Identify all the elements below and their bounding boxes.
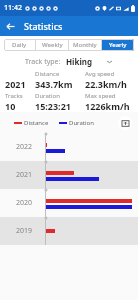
staticText: Monthly [73,41,97,49]
staticText: 2020 [16,198,33,208]
staticText: 15:23:21 [35,100,71,112]
button[interactable]: Back [1,17,19,35]
button[interactable]: Track type: [0,54,138,69]
button[interactable]: Monthly [69,39,101,51]
staticText: Weekly [42,41,63,49]
staticText: Daily [12,41,27,49]
staticText: Duration [35,92,60,100]
staticText: 11:42 [4,3,22,13]
button[interactable]: Yearly [102,39,134,51]
button[interactable]: 2022 [0,133,138,161]
staticText: 10 [5,100,16,112]
staticText: 1226km/h [85,100,130,112]
button[interactable]: Export [118,116,132,130]
button[interactable]: Weekly [36,39,68,51]
staticText: Track type: [25,57,61,67]
staticText: Hiking [66,56,93,67]
staticText: Tracks [5,92,23,100]
button[interactable]: 2021 [0,161,138,189]
staticText: Duration [69,119,94,127]
button[interactable]: 2020 [0,189,138,217]
staticText: Distance [24,119,49,127]
staticText: 2022 [16,142,33,152]
staticText: Statistics [24,20,63,32]
button[interactable]: 2019 [0,217,138,245]
button[interactable]: Daily [4,39,35,51]
staticText: Max speed [85,92,116,100]
staticText: 2021 [5,78,26,90]
staticText: 22.3km/h [85,78,127,90]
staticText: 343.7km [35,78,73,90]
staticText: Distance [35,70,60,78]
staticText: 2019 [16,226,33,236]
staticText: Avg speed [85,70,115,78]
staticText: Yearly [109,41,127,49]
staticText: 2021 [16,170,33,180]
